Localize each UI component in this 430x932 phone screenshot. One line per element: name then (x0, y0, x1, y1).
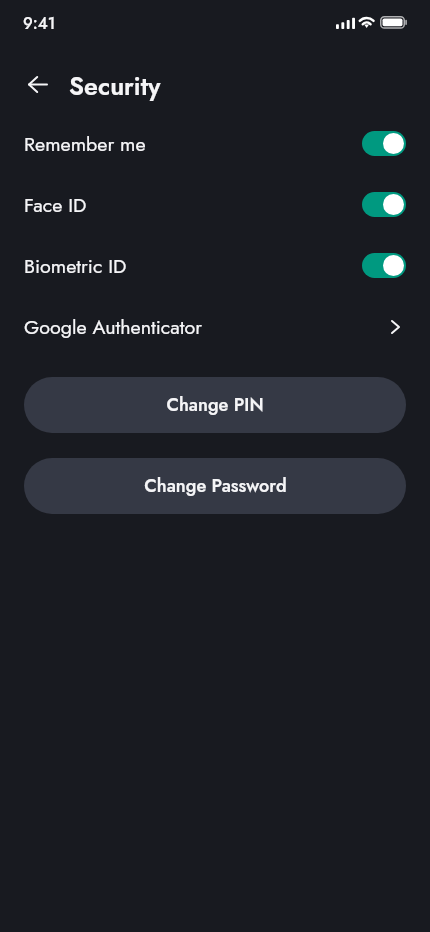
button[interactable]: Google Authenticator (0, 296, 430, 357)
staticText: Change Password (144, 473, 287, 499)
staticText: Biometric ID (24, 252, 362, 280)
staticText: Face ID (24, 191, 362, 219)
button[interactable]: Remember me (0, 113, 430, 174)
button[interactable]: Change PIN (24, 377, 406, 433)
button[interactable]: Face ID (0, 174, 430, 235)
staticText: Security (69, 68, 161, 104)
staticText: Google Authenticator (24, 313, 391, 341)
button[interactable]: Biometric ID (0, 235, 430, 296)
staticText: 9:41 (23, 12, 56, 35)
staticText: Remember me (24, 130, 362, 158)
button[interactable]: Toggle Face ID (362, 192, 406, 217)
staticText: Change PIN (166, 392, 264, 418)
button[interactable]: Change Password (24, 458, 406, 514)
button[interactable]: Toggle Biometric ID (362, 253, 406, 278)
button[interactable]: Back (16, 62, 60, 106)
button[interactable]: Toggle Remember me (362, 131, 406, 156)
